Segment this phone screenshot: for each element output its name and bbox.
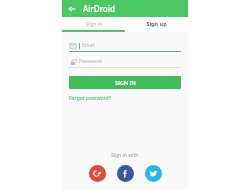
staticText: SIGN IN bbox=[115, 79, 136, 86]
button[interactable]: SIGN IN bbox=[69, 76, 181, 89]
staticText: Forgot password? bbox=[69, 95, 111, 102]
button[interactable]: Email bbox=[69, 40, 181, 52]
button[interactable]: Sign in with Google bbox=[89, 165, 106, 182]
staticText: AirDroid bbox=[83, 3, 115, 14]
button[interactable]: Back bbox=[66, 3, 78, 15]
staticText: Password bbox=[79, 58, 102, 65]
button[interactable]: Sign in with Twitter bbox=[145, 165, 162, 182]
button[interactable]: Password bbox=[69, 56, 181, 68]
staticText: Email bbox=[82, 42, 95, 49]
button[interactable]: Sign in bbox=[62, 17, 125, 30]
button[interactable]: Forgot password? bbox=[69, 95, 111, 102]
staticText: Sign in bbox=[85, 20, 103, 27]
button[interactable]: Sign up bbox=[125, 17, 188, 30]
staticText: Sign up bbox=[146, 20, 167, 27]
staticText: Sign in with bbox=[111, 152, 139, 159]
button[interactable]: Sign in with Facebook bbox=[117, 165, 134, 182]
